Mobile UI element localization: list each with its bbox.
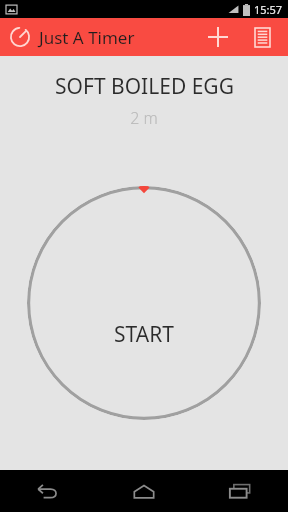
staticText: Just A Timer	[39, 26, 135, 49]
staticText: 2 m	[130, 107, 158, 129]
button[interactable]: START	[27, 186, 261, 420]
button[interactable]: Add timer	[196, 18, 240, 56]
staticText: START	[114, 320, 174, 349]
button[interactable]: Recent apps	[192, 470, 288, 512]
button[interactable]: Timer list	[240, 18, 284, 56]
button[interactable]: Back	[0, 470, 96, 512]
staticText: 15:57	[254, 2, 283, 17]
staticText: SOFT BOILED EGG	[55, 72, 234, 101]
button[interactable]: Home	[96, 470, 192, 512]
